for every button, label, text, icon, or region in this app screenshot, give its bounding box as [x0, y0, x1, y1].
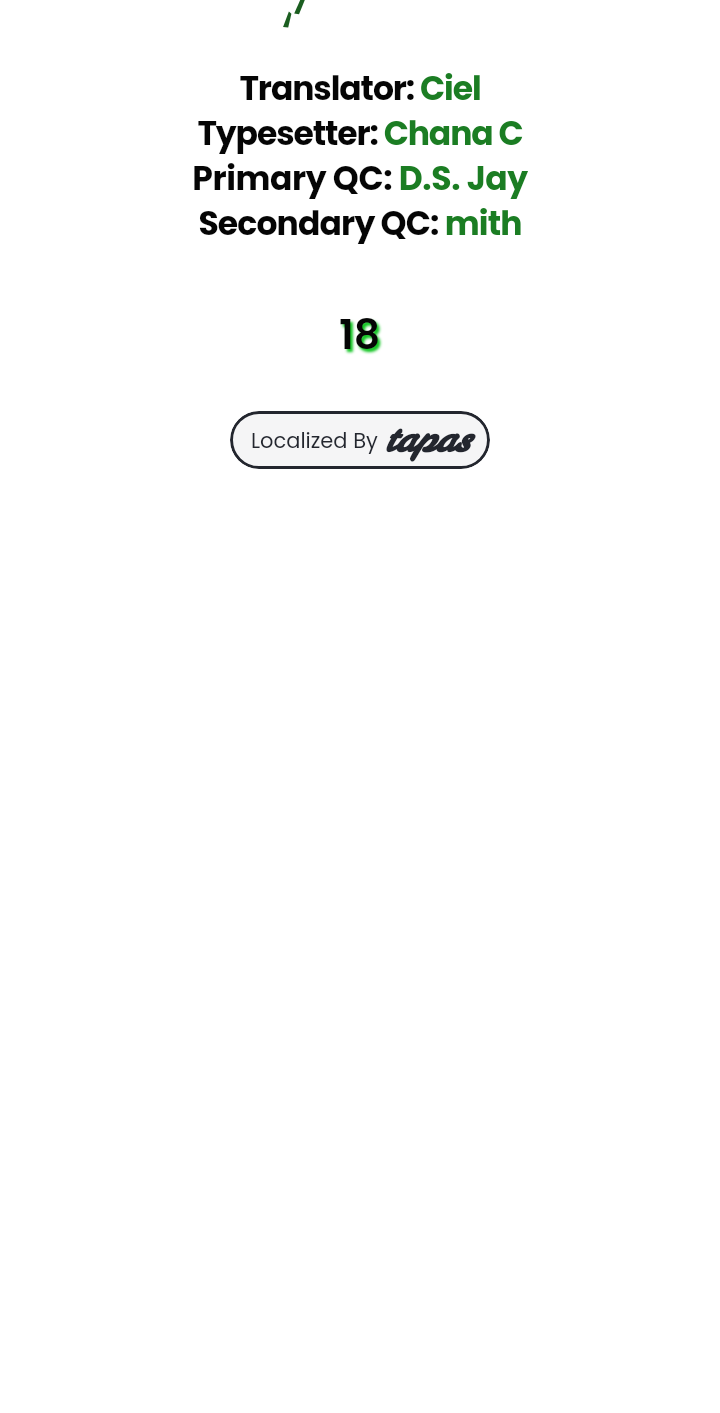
- staticText: 18: [339, 306, 381, 363]
- staticText: Secondary QC: mith: [198, 200, 522, 245]
- staticText: Localized By: [251, 426, 378, 455]
- staticText: Primary QC: D.S. Jay: [192, 155, 528, 200]
- staticText: Translator: Ciel: [239, 65, 481, 110]
- button[interactable]: Localized By tapas: [230, 411, 490, 469]
- staticText: Typesetter: Chana C: [197, 110, 523, 155]
- staticText: tapas: [383, 416, 469, 463]
